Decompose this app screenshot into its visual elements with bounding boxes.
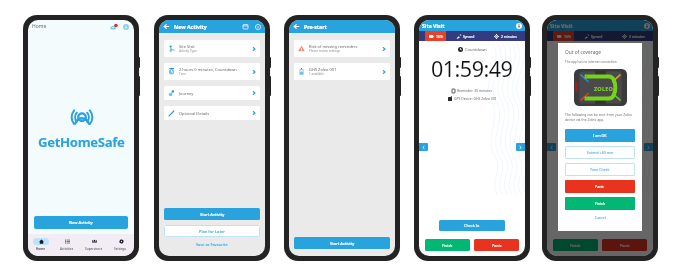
button[interactable]: Panic [565,180,635,193]
staticText: Plan for Later [199,229,225,234]
button[interactable]: Risk of missing reminders [294,40,390,57]
button[interactable]: Previous [547,143,556,151]
staticText: 2 minutes [501,34,517,39]
button[interactable]: New Activity [34,216,128,229]
staticText: Finish [595,201,605,206]
staticText: Out of coverage [565,49,601,56]
button[interactable]: Messages [110,23,118,31]
staticText: 16% [436,34,443,39]
button[interactable]: 16% [425,31,446,41]
button[interactable]: Optional Details [164,106,260,120]
staticText: Save as Favourite [196,242,228,247]
staticText: Finish [570,243,581,248]
button[interactable]: Extend +60 min [565,146,635,159]
staticText: 16% [564,34,571,39]
button[interactable]: Start Activity [164,208,260,220]
staticText: Start Activity [330,241,355,246]
staticText: Risk of missing reminders [309,44,358,49]
button[interactable]: Calendar [241,22,250,31]
staticText: Settings [114,247,127,251]
button[interactable]: Finish [425,239,470,251]
staticText: Journey [179,91,194,96]
button[interactable]: Back [162,22,171,31]
button[interactable]: I am OK [565,129,635,142]
button[interactable]: GHS Zoleo 001 [294,63,390,80]
staticText: Pre-start [304,23,327,30]
staticText: The following can be sent from your Zole… [565,112,635,122]
staticText: Time Check [590,167,610,172]
button[interactable]: Panic [602,239,647,251]
button[interactable]: Previous [419,143,428,151]
staticText: New Activity [174,23,207,30]
staticText: 01:59:49 [559,54,641,83]
staticText: GHS Zoleo 001 [309,67,337,72]
button[interactable]: Next [516,143,525,151]
staticText: I am OK [593,133,607,138]
staticText: Activities [60,247,74,251]
button[interactable]: Site Visit [164,40,260,57]
staticText: Please review settings [309,49,340,53]
button[interactable]: Back [292,22,301,31]
button[interactable]: Info [122,23,130,31]
staticText: Check In [464,223,480,228]
staticText: Site Visit [179,44,195,49]
staticText: Supervisors [85,247,103,251]
button[interactable]: Supervisors [80,234,107,256]
staticText: Extend +60 min [587,150,614,155]
button[interactable]: Info [253,22,262,31]
button[interactable]: 16% [553,31,574,41]
button[interactable]: Time Check [565,163,635,176]
button[interactable]: Synced [574,31,613,41]
staticText: Countdown [593,47,615,52]
button[interactable]: Plan for Later [164,225,260,237]
staticText: 01:59:49 [431,54,513,83]
staticText: Panic [595,184,605,189]
staticText: Activity Type [179,49,197,53]
staticText: GPS Device: GHS Zoleo 001 [582,96,625,101]
button[interactable]: Info [643,22,650,29]
staticText: GPS Device: GHS Zoleo 001 [454,96,497,101]
button[interactable]: Finish [565,197,635,210]
staticText: 1 available [309,72,324,76]
staticText: Reminder: 30 minutes [585,88,621,93]
staticText: Finish [442,243,453,248]
staticText: Start Activity [200,212,225,217]
button[interactable]: Home [28,234,54,256]
button[interactable]: Panic [474,239,519,251]
staticText: Reminder: 30 minutes [457,88,493,93]
button[interactable]: 2 minutes [613,31,653,41]
button[interactable]: Settings [107,234,134,256]
staticText: 2 minutes [629,34,645,39]
staticText: ZOLEO [594,85,613,92]
button[interactable]: 2 hours 0 minutes, Countdown [164,63,260,80]
staticText: Site Visit [422,22,445,29]
staticText: 2 hours 0 minutes, Countdown [179,67,237,72]
button[interactable]: 2 minutes [485,31,525,41]
staticText: Site Visit [550,22,573,29]
button[interactable]: Journey [164,86,260,100]
staticText: Cancel [595,215,606,220]
staticText: Synced [591,34,603,39]
staticText: Home [32,23,47,30]
staticText: Countdown [465,47,487,52]
button[interactable]: Start Activity [294,237,390,249]
staticText: Synced [463,34,475,39]
button[interactable]: Save as Favourite [159,241,265,247]
staticText: GetHomeSafe [38,133,125,151]
button[interactable]: Cancel [565,214,635,221]
staticText: Optional Details [179,111,210,116]
staticText: Time [179,72,186,76]
button[interactable]: Finish [553,239,598,251]
button[interactable]: Check In [439,220,505,231]
staticText: Home [36,247,46,251]
button[interactable]: Activities [54,234,80,256]
staticText: New Activity [69,220,93,225]
staticText: The app has no internet connection [565,60,617,64]
staticText: Panic [492,243,502,248]
staticText: Panic [620,243,630,248]
button[interactable]: Info [515,22,522,29]
button[interactable]: Next [644,143,653,151]
button[interactable]: Synced [446,31,485,41]
